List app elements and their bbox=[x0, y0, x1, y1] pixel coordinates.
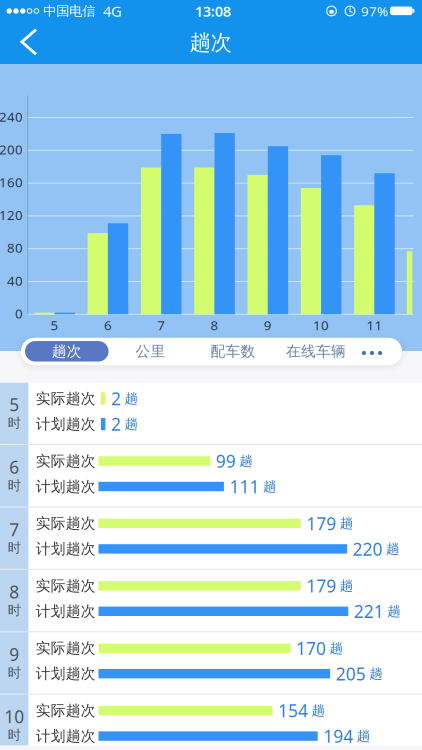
staticText: 实际趟次 bbox=[36, 390, 96, 408]
staticText: 实际趟次 bbox=[36, 514, 96, 532]
button[interactable]: Back bbox=[8, 21, 52, 63]
staticText: 205 bbox=[336, 662, 366, 685]
staticText: 179 bbox=[306, 512, 336, 535]
staticText: 计划趟次 bbox=[36, 665, 96, 683]
staticText: 趟 bbox=[369, 665, 382, 682]
staticText: 趟 bbox=[330, 640, 343, 656]
staticText: 9 bbox=[9, 643, 19, 666]
staticText: 时 bbox=[8, 664, 21, 681]
staticText: 170 bbox=[296, 637, 326, 660]
staticText: 5 bbox=[51, 316, 59, 334]
staticText: 10 bbox=[313, 316, 329, 334]
staticText: 实际趟次 bbox=[36, 639, 96, 657]
staticText: 40 bbox=[7, 272, 23, 289]
button[interactable]: 在线车辆 bbox=[276, 338, 356, 364]
staticText: 7 bbox=[9, 518, 19, 541]
button[interactable]: 配车数 bbox=[195, 338, 271, 364]
staticText: 97% bbox=[361, 2, 388, 20]
staticText: 趟 bbox=[340, 515, 353, 532]
staticText: 趟 bbox=[239, 453, 252, 469]
staticText: 154 bbox=[278, 699, 308, 722]
staticText: 趟 bbox=[386, 541, 399, 557]
staticText: 0 bbox=[15, 304, 23, 322]
staticText: 6 bbox=[104, 316, 112, 334]
staticText: 2 bbox=[111, 387, 121, 410]
staticText: 趟 bbox=[124, 416, 137, 432]
button[interactable]: 趟次 bbox=[25, 341, 108, 362]
staticText: 实际趟次 bbox=[36, 577, 96, 595]
staticText: 趟 bbox=[124, 390, 137, 407]
staticText: 趟 bbox=[340, 578, 353, 594]
staticText: 6 bbox=[9, 455, 19, 478]
staticText: 194 bbox=[323, 725, 353, 748]
staticText: 7 bbox=[157, 316, 165, 334]
staticText: 计划趟次 bbox=[36, 477, 96, 495]
staticText: 公里 bbox=[135, 342, 165, 360]
staticText: 11 bbox=[366, 316, 382, 334]
staticText: 实际趟次 bbox=[36, 452, 96, 470]
staticText: 中国电信 bbox=[43, 3, 95, 19]
staticText: 时 bbox=[8, 727, 21, 743]
staticText: 200 bbox=[0, 140, 23, 158]
staticText: 220 bbox=[353, 537, 383, 560]
staticText: 时 bbox=[8, 540, 21, 556]
staticText: 趟 bbox=[387, 603, 400, 619]
staticText: 趟 bbox=[357, 728, 370, 744]
staticText: 计划趟次 bbox=[36, 540, 96, 558]
staticText: 9 bbox=[264, 316, 272, 334]
staticText: 120 bbox=[0, 206, 23, 224]
staticText: 时 bbox=[8, 477, 21, 494]
staticText: 趟 bbox=[311, 702, 324, 719]
staticText: 179 bbox=[306, 574, 336, 597]
staticText: 趟 bbox=[263, 478, 276, 495]
staticText: 5 bbox=[9, 393, 19, 416]
staticText: 240 bbox=[0, 108, 23, 125]
staticText: 配车数 bbox=[210, 342, 255, 360]
staticText: 8 bbox=[9, 580, 19, 603]
staticText: 趟次 bbox=[52, 342, 82, 360]
button[interactable]: More bbox=[354, 340, 390, 366]
button[interactable]: 公里 bbox=[115, 338, 185, 364]
staticText: 4G bbox=[103, 1, 122, 21]
staticText: 111 bbox=[229, 475, 259, 498]
staticText: 在线车辆 bbox=[286, 342, 346, 360]
staticText: 计划趟次 bbox=[36, 727, 96, 745]
staticText: 10 bbox=[4, 705, 24, 728]
staticText: 8 bbox=[210, 316, 218, 334]
staticText: 计划趟次 bbox=[36, 602, 96, 620]
staticText: 13:08 bbox=[195, 1, 231, 21]
staticText: 趟次 bbox=[190, 30, 232, 56]
staticText: 2 bbox=[111, 413, 121, 436]
staticText: 99 bbox=[216, 449, 236, 472]
staticText: 80 bbox=[7, 239, 23, 256]
staticText: 160 bbox=[0, 173, 23, 191]
staticText: 时 bbox=[8, 415, 21, 431]
staticText: 时 bbox=[8, 602, 21, 618]
staticText: 计划趟次 bbox=[36, 415, 96, 433]
staticText: 221 bbox=[354, 600, 384, 623]
staticText: 实际趟次 bbox=[36, 702, 96, 720]
